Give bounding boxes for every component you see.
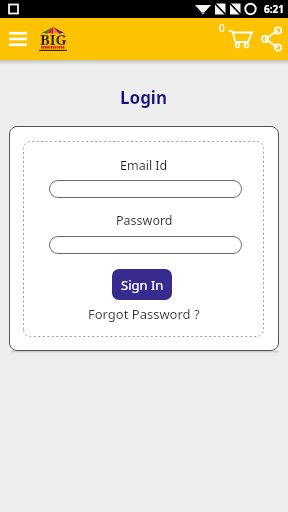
button[interactable]: Forgot Password ?	[9, 305, 279, 323]
staticText: BIG	[40, 29, 67, 49]
staticText: Login	[120, 86, 168, 109]
button[interactable]: Sign In	[112, 269, 172, 300]
staticText: 6:21	[264, 2, 284, 16]
button[interactable]: 0	[214, 18, 260, 60]
staticText: Sign In	[121, 276, 164, 294]
button[interactable]	[256, 26, 284, 52]
staticText: Password	[116, 212, 173, 229]
staticText: Forgot Password ?	[88, 305, 200, 323]
button[interactable]	[49, 180, 242, 198]
staticText: Email Id	[120, 157, 168, 174]
button[interactable]	[49, 236, 242, 254]
staticText: 0	[219, 21, 225, 35]
button[interactable]	[0, 18, 36, 60]
